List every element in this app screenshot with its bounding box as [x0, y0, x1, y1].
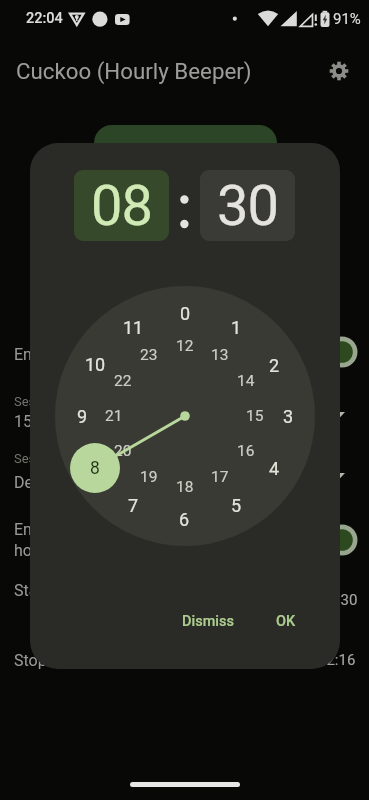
staticText: 23	[140, 346, 158, 364]
staticText: 21	[105, 407, 123, 425]
staticText: 7	[128, 495, 139, 516]
staticText: 2	[269, 355, 280, 376]
staticText: 0	[180, 303, 191, 324]
button[interactable]	[327, 59, 351, 83]
staticText: 08	[91, 173, 152, 239]
staticText: 8	[90, 458, 100, 479]
staticText: Default	[14, 473, 66, 492]
staticText: 16	[237, 442, 255, 460]
button[interactable]: 08	[74, 170, 169, 241]
staticText: 9	[77, 406, 88, 427]
staticText: 3	[283, 406, 294, 427]
staticText: Stop time	[14, 651, 83, 670]
button[interactable]: 30	[200, 170, 295, 241]
staticText: Cuckoo (Hourly Beeper)	[16, 58, 252, 84]
staticText: 22:16	[318, 651, 356, 669]
staticText: 6	[179, 509, 190, 530]
button[interactable]: OK	[256, 601, 316, 641]
staticText: 15 minutes	[14, 412, 94, 431]
staticText: 22	[114, 372, 132, 390]
staticText: 4	[269, 458, 280, 479]
button[interactable]	[94, 125, 277, 173]
staticText: 91%	[333, 10, 361, 28]
staticText: 15	[246, 407, 264, 425]
staticText: 11	[123, 317, 144, 338]
staticText: 10	[85, 354, 106, 375]
staticText: Dismiss	[182, 613, 234, 630]
staticText: Enable between	[14, 520, 127, 539]
staticText: 13	[211, 346, 229, 364]
staticText: Session sound	[14, 451, 99, 466]
staticText: 18	[176, 478, 194, 496]
staticText: 5	[231, 495, 242, 516]
button[interactable]: 8	[70, 443, 120, 493]
staticText: 14	[237, 372, 255, 390]
staticText: Start time	[14, 581, 85, 600]
staticText: 19	[140, 468, 158, 486]
staticText: 30	[217, 173, 278, 239]
staticText: 1	[231, 317, 242, 338]
staticText: Session interval	[14, 394, 106, 409]
staticText: OK	[276, 613, 296, 630]
staticText: 12	[176, 337, 194, 355]
staticText: 20	[114, 442, 132, 460]
button[interactable]: Dismiss	[163, 601, 253, 641]
staticText: 15:30	[320, 591, 358, 609]
staticText: Enable hourly beeps	[14, 345, 157, 364]
staticText: 22:04	[26, 10, 63, 27]
staticText: hours only	[14, 541, 88, 560]
staticText: 17	[211, 468, 229, 486]
